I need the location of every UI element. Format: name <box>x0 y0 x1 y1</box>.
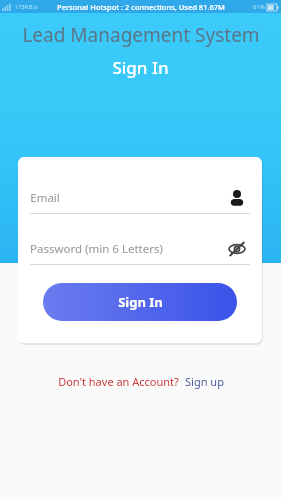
button[interactable]: Account <box>224 185 250 211</box>
staticText: 61% <box>253 3 265 11</box>
staticText: Sign up <box>185 374 224 389</box>
button[interactable]: Don't have an Account? <box>52 370 230 393</box>
staticText: Don't have an Account? <box>58 374 179 389</box>
button[interactable]: Show password <box>224 236 250 262</box>
staticText: Lead Management System <box>22 22 260 48</box>
staticText: 173KB/s <box>14 3 38 11</box>
staticText: Sign In <box>112 56 169 79</box>
button[interactable]: Sign In <box>43 283 237 321</box>
staticText: Sign In <box>118 293 163 311</box>
staticText: Password (min 6 Letters) <box>30 241 163 257</box>
staticText: Personal Hotspot : 2 connections, Used 8… <box>57 2 225 12</box>
staticText: Email <box>30 190 60 206</box>
